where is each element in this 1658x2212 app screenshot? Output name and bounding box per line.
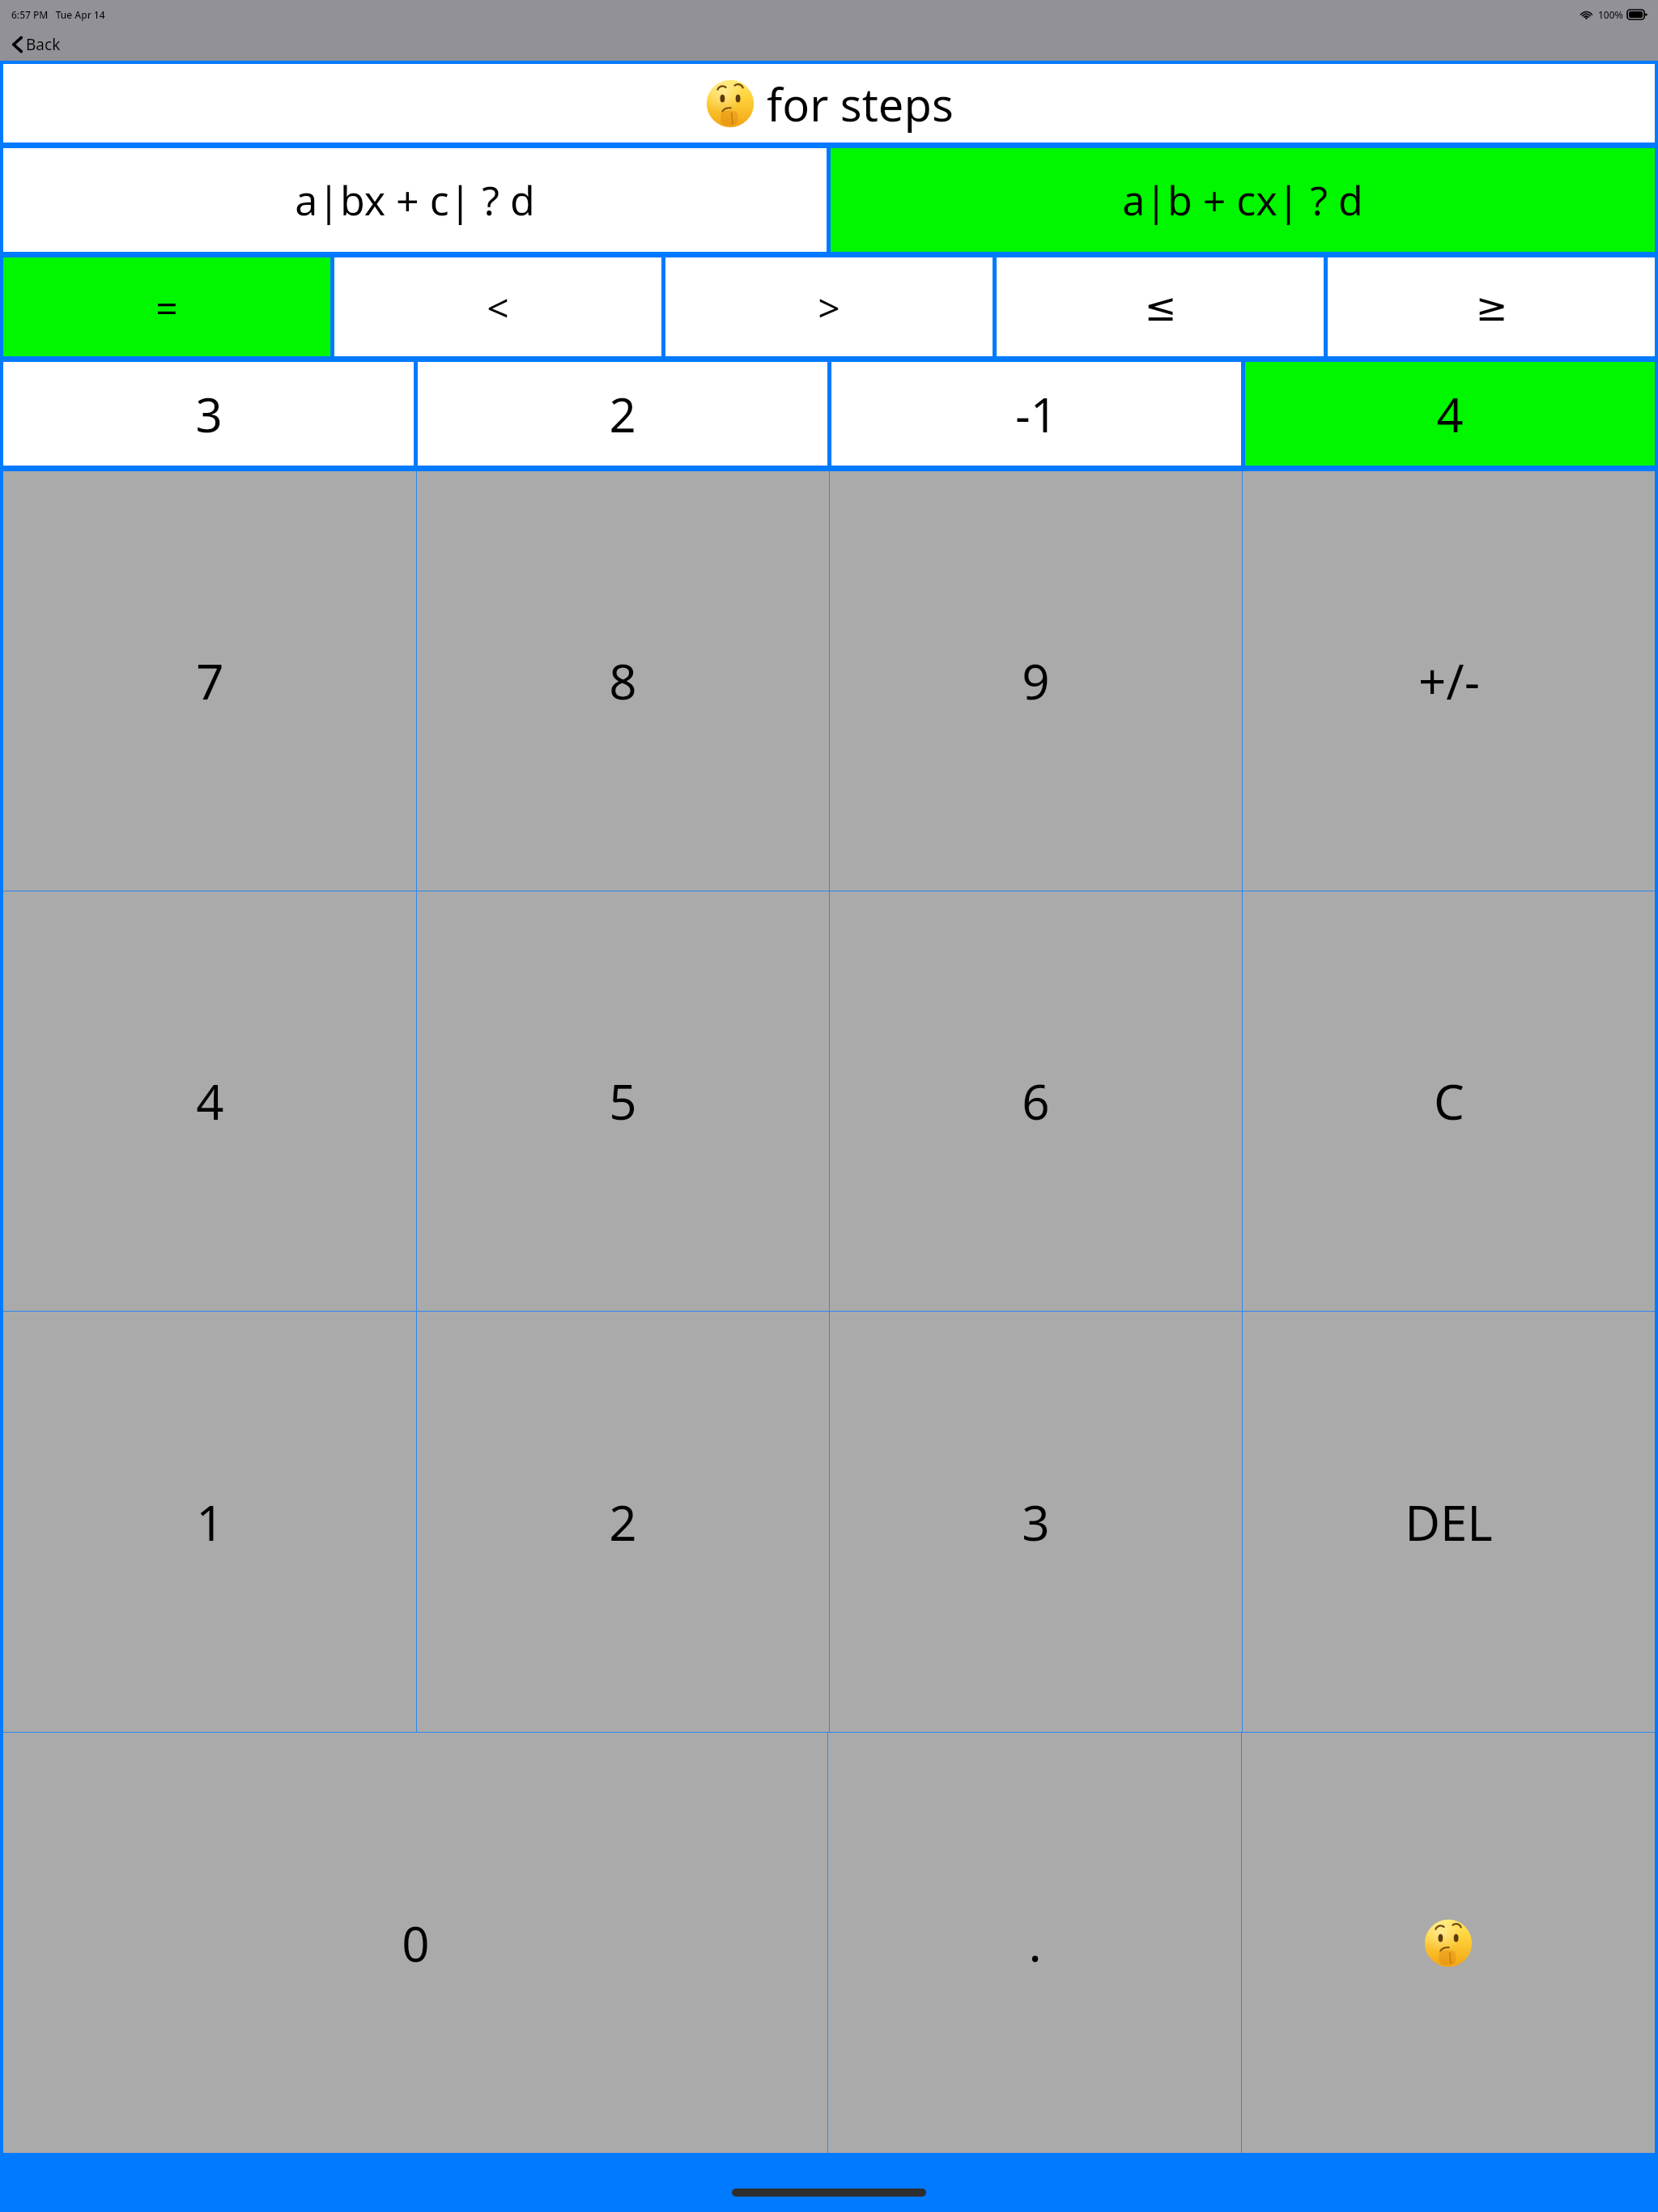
button[interactable]: 8 <box>417 471 829 891</box>
button[interactable]: DEL <box>1243 1312 1655 1732</box>
staticText: 2 <box>609 382 636 446</box>
staticText: Back <box>26 34 61 55</box>
button[interactable]: 2 <box>418 362 827 466</box>
staticText: ≥ <box>1475 284 1508 330</box>
button[interactable]: C <box>1243 891 1655 1311</box>
button[interactable]: 6 <box>830 891 1242 1311</box>
button[interactable]: 2 <box>417 1312 829 1732</box>
staticText: +/- <box>1418 648 1480 714</box>
staticText: 9 <box>1022 648 1050 714</box>
button[interactable]: +/- <box>1243 471 1655 891</box>
staticText: C <box>1434 1068 1465 1134</box>
button[interactable]: ≥ <box>1328 257 1655 356</box>
staticText: . <box>1028 1910 1042 1976</box>
staticText: 3 <box>1022 1489 1050 1555</box>
button[interactable]: 3 <box>3 362 414 466</box>
button[interactable]: 7 <box>3 471 416 891</box>
staticText: 6 <box>1022 1068 1050 1134</box>
staticText: DEL <box>1405 1489 1493 1555</box>
staticText: > <box>818 281 840 334</box>
button[interactable]: 4 <box>3 891 416 1311</box>
button[interactable]: a|b + cx| ? d <box>831 148 1655 252</box>
button[interactable]: = <box>3 257 330 356</box>
button[interactable]: Back <box>8 31 64 58</box>
button[interactable]: for steps <box>3 64 1655 143</box>
staticText: 6:57 PM Tue Apr 14 <box>11 8 105 21</box>
staticText: 8 <box>609 648 637 714</box>
button[interactable]: > <box>665 257 993 356</box>
staticText: 2 <box>609 1489 637 1555</box>
button[interactable]: < <box>334 257 661 356</box>
button[interactable]: a|bx + c| ? d <box>3 148 827 252</box>
staticText: = <box>155 281 178 334</box>
staticText: 5 <box>609 1068 637 1134</box>
staticText: 4 <box>196 1068 224 1134</box>
staticText: 100% <box>1598 8 1623 21</box>
button[interactable]: 1 <box>3 1312 416 1732</box>
button[interactable]: 9 <box>830 471 1242 891</box>
staticText: 4 <box>1436 382 1464 446</box>
staticText: a|bx + c| ? d <box>295 172 535 228</box>
button[interactable]: 0 <box>3 1733 827 2153</box>
button[interactable]: -1 <box>831 362 1241 466</box>
button[interactable]: 5 <box>417 891 829 1311</box>
staticText: 0 <box>402 1910 430 1976</box>
button[interactable]: 3 <box>830 1312 1242 1732</box>
button[interactable]: Show steps <box>1242 1733 1655 2153</box>
staticText: 1 <box>196 1489 224 1555</box>
button[interactable]: . <box>828 1733 1241 2153</box>
staticText: ≤ <box>1144 284 1177 330</box>
staticText: 7 <box>196 648 224 714</box>
button[interactable]: ≤ <box>997 257 1324 356</box>
staticText: -1 <box>1015 382 1057 446</box>
staticText: a|b + cx| ? d <box>1122 172 1363 228</box>
staticText: for steps <box>767 73 954 134</box>
button[interactable]: 4 <box>1245 362 1655 466</box>
staticText: 3 <box>195 382 223 446</box>
staticText: < <box>487 281 509 334</box>
